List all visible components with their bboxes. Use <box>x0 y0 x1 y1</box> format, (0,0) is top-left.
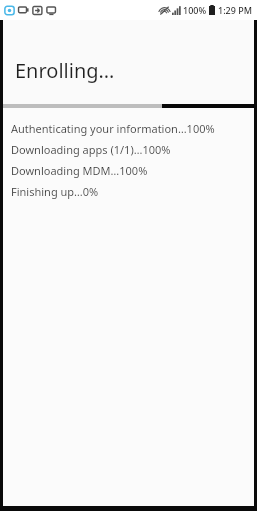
staticText: Enrolling… <box>15 57 115 84</box>
button[interactable]: Authenticating your information…100% <box>11 118 246 139</box>
staticText: Downloading apps (1/1)…100% <box>11 142 171 157</box>
staticText: 1:29 PM <box>218 4 252 16</box>
staticText: Downloading MDM…100% <box>11 163 148 178</box>
staticText: Authenticating your information…100% <box>11 121 215 136</box>
staticText: Finishing up…0% <box>11 184 99 199</box>
button[interactable]: Downloading MDM…100% <box>11 160 246 181</box>
button[interactable]: Finishing up…0% <box>11 181 246 202</box>
staticText: 100% <box>183 4 207 16</box>
button[interactable]: Downloading apps (1/1)…100% <box>11 139 246 160</box>
